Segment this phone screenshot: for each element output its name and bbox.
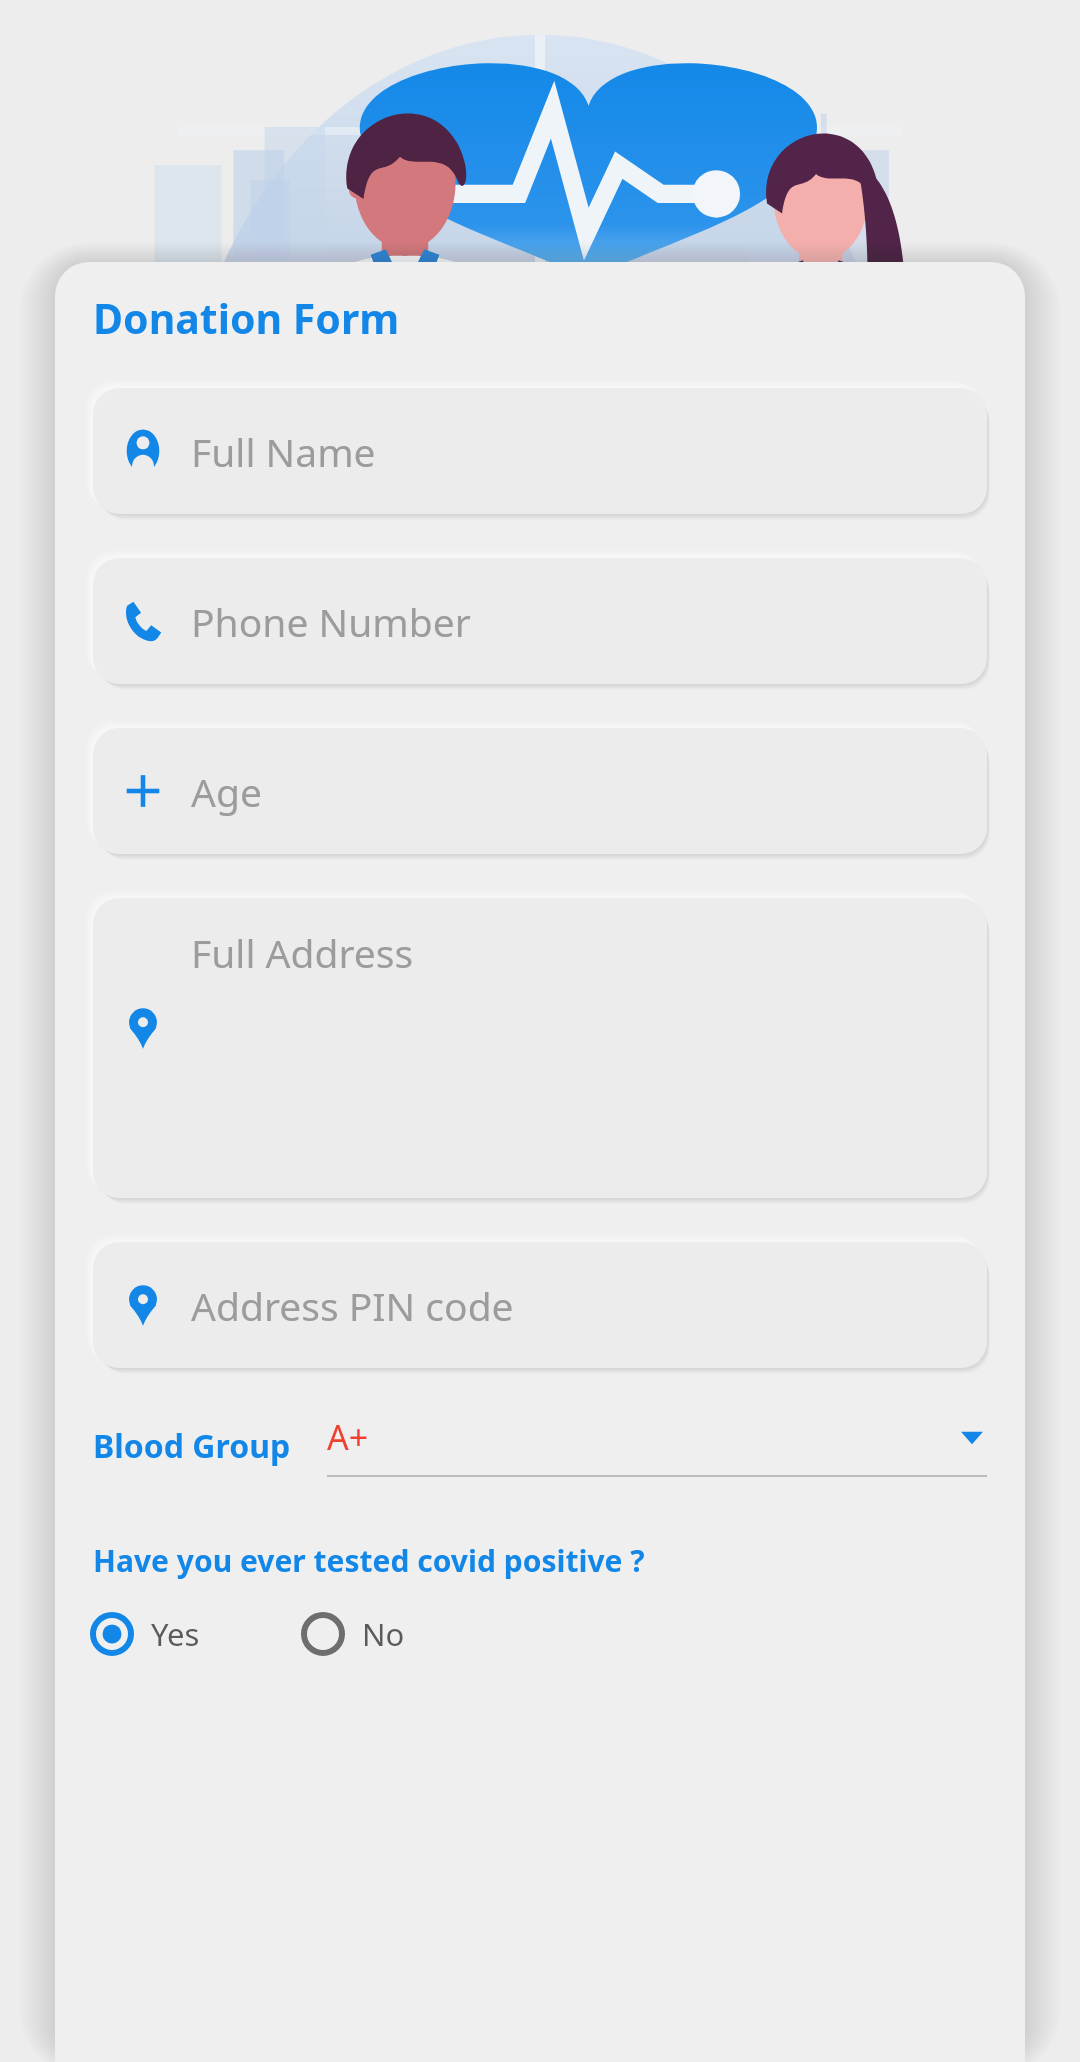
button[interactable]: A+ (327, 1414, 987, 1478)
button[interactable]: Address PIN code (93, 1242, 987, 1368)
staticText: Blood Group (93, 1424, 291, 1468)
staticText: Full Address (191, 926, 414, 979)
staticText: A+ (327, 1414, 369, 1460)
button[interactable]: Yes (89, 1611, 200, 1657)
button[interactable]: Full Name (93, 388, 987, 514)
other: Select blood group (961, 1424, 983, 1450)
staticText: Age (191, 765, 262, 818)
staticText: Phone Number (191, 595, 471, 648)
staticText: Yes (151, 1613, 200, 1655)
button[interactable]: Phone Number (93, 558, 987, 684)
staticText: Full Name (191, 425, 376, 478)
staticText: No (362, 1613, 405, 1655)
staticText: Have you ever tested covid positive ? (93, 1540, 645, 1581)
button[interactable]: Full Address (93, 898, 987, 1198)
button[interactable]: Age (93, 728, 987, 854)
button[interactable]: No (300, 1611, 405, 1657)
staticText: Donation Form (93, 290, 400, 346)
staticText: Address PIN code (191, 1279, 514, 1332)
